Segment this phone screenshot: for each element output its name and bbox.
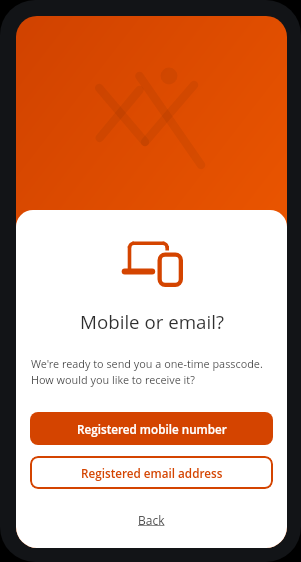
button[interactable]: Registered email address	[30, 456, 273, 489]
staticText: Back	[138, 512, 165, 528]
staticText: Mobile or email?	[80, 309, 224, 334]
staticText: We're ready to send you a one-time passc…	[31, 356, 274, 387]
button[interactable]: Registered mobile number	[30, 412, 273, 445]
staticText: Registered email address	[81, 465, 223, 481]
staticText: Registered mobile number	[77, 421, 227, 437]
other: Devices	[121, 241, 183, 287]
button[interactable]: Back	[128, 509, 175, 531]
